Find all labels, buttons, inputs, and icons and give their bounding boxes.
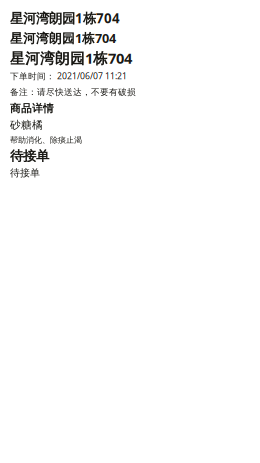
staticText: 星河湾朗园1栋704 xyxy=(10,9,120,27)
staticText: 待接单 xyxy=(10,148,49,164)
staticText: 商品详情 xyxy=(10,102,54,115)
staticText: 星河湾朗园1栋704 xyxy=(10,29,116,47)
staticText: 待接单 xyxy=(10,167,40,179)
staticText: 砂糖橘 xyxy=(10,118,43,132)
staticText: 帮助消化、除痰止渴 xyxy=(10,135,82,145)
staticText: 星河湾朗园1栋704 xyxy=(10,48,132,68)
staticText: 备注：请尽快送达，不要有破损 xyxy=(10,86,136,97)
staticText: 下单时间： 2021/06/07 11:21 xyxy=(10,70,127,82)
